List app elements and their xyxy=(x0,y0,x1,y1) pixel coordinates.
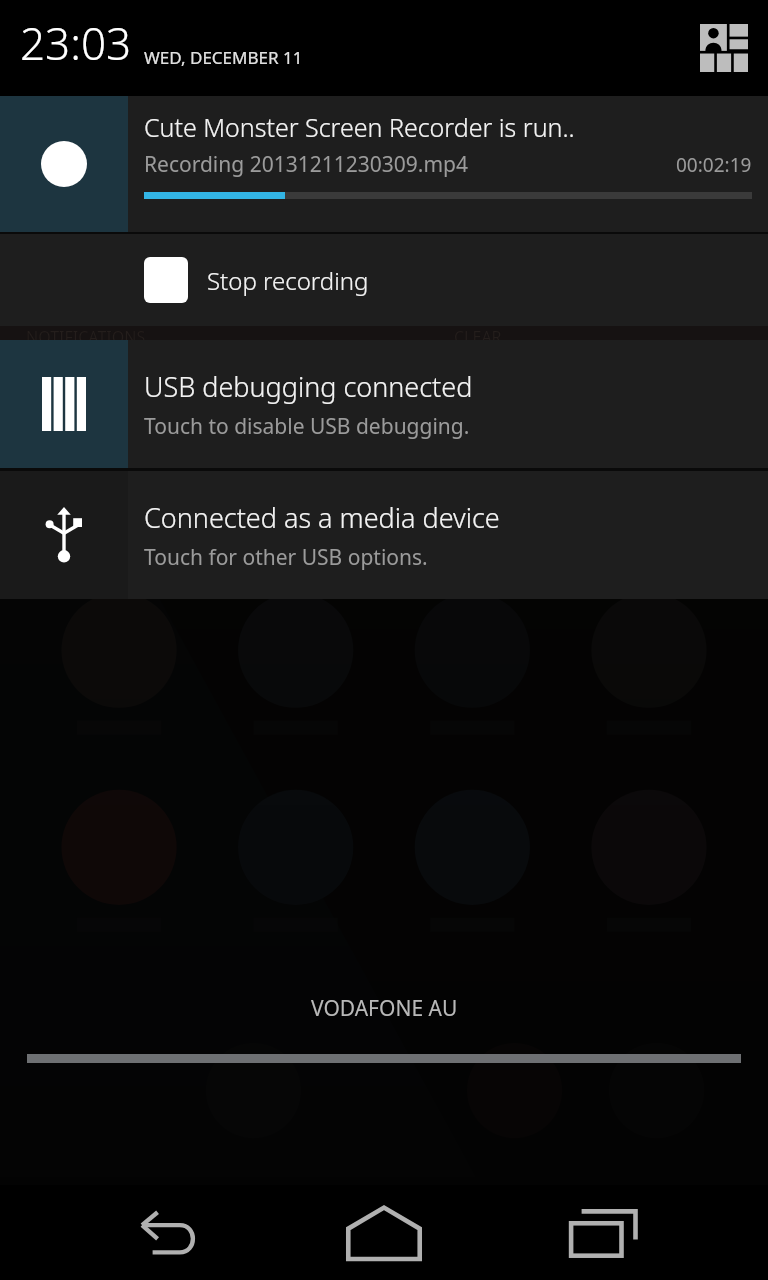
staticText: 23:03 xyxy=(20,13,132,73)
button[interactable]: Back xyxy=(110,1185,220,1280)
staticText: NOTIFICATIONS xyxy=(26,326,146,340)
staticText: USB debugging connected xyxy=(144,368,473,405)
staticText: Touch to disable USB debugging. xyxy=(144,412,470,441)
staticText: Cute Monster Screen Recorder is run.. xyxy=(144,110,575,144)
staticText: Touch for other USB options. xyxy=(144,543,428,572)
staticText: Recording 20131211230309.mp4 xyxy=(144,150,676,179)
staticText: Stop recording xyxy=(207,264,369,297)
staticText: Connected as a media device xyxy=(144,499,500,536)
button[interactable]: Connected as a media device xyxy=(0,471,768,599)
button[interactable]: Quick settings xyxy=(698,22,750,74)
staticText: 00:02:19 xyxy=(676,152,752,178)
button[interactable]: Home xyxy=(329,1185,439,1280)
staticText: VODAFONE AU xyxy=(311,994,458,1023)
button[interactable]: Cute Monster Screen Recorder is run.. xyxy=(0,96,768,232)
staticText: CLEAR xyxy=(454,326,502,340)
button[interactable]: USB debugging connected xyxy=(0,340,768,468)
staticText: WED, DECEMBER 11 xyxy=(144,46,303,69)
button[interactable]: Stop recording xyxy=(0,234,768,326)
button[interactable]: Recent apps xyxy=(549,1185,659,1280)
